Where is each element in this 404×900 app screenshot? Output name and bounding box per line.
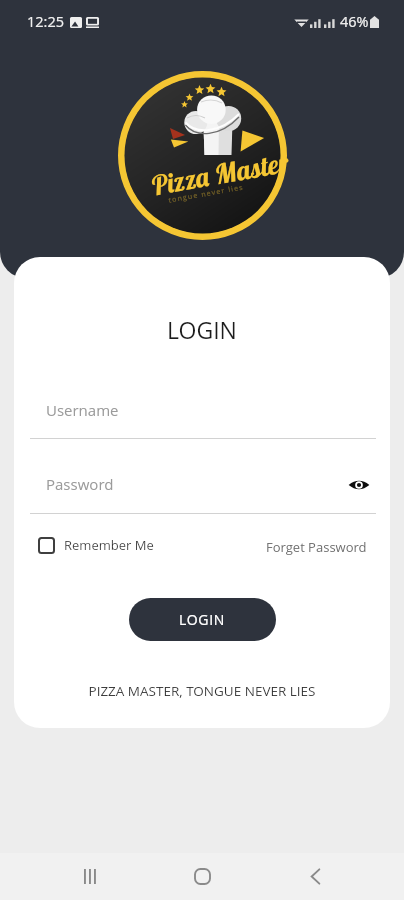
button[interactable]: Home: [178, 853, 226, 900]
button[interactable]: LOGIN: [129, 598, 276, 641]
button[interactable]: Remember Me: [36, 534, 156, 556]
staticText: tongue never lies: [168, 182, 245, 206]
button[interactable]: Show password: [344, 470, 374, 500]
staticText: LOGIN: [179, 610, 226, 629]
staticText: PIZZA MASTER, TONGUE NEVER LIES: [14, 682, 390, 700]
staticText: Username: [46, 400, 119, 420]
button[interactable]: Recents: [65, 853, 113, 900]
staticText: 46%: [340, 12, 369, 32]
staticText: Remember Me: [64, 536, 154, 554]
staticText: Password: [46, 474, 114, 494]
button[interactable]: Forget Password: [264, 536, 369, 558]
button[interactable]: Back: [291, 853, 339, 900]
staticText: 12:25: [27, 12, 65, 32]
staticText: Pizza Master: [148, 145, 291, 203]
staticText: LOGIN: [14, 314, 390, 345]
